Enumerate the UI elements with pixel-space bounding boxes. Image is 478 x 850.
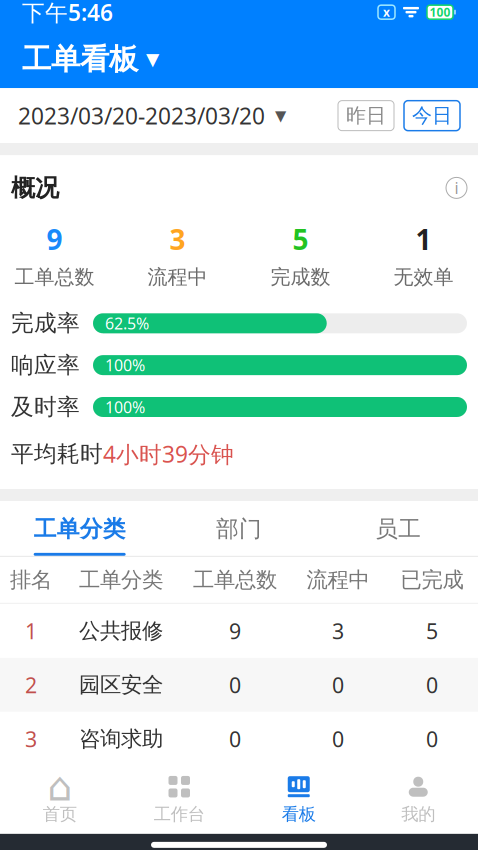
staticText: 2023/03/20-2023/03/20	[18, 101, 265, 131]
button[interactable]: 工单分类	[0, 501, 159, 556]
button[interactable]: ⌂	[0, 769, 119, 831]
staticText: 我的	[401, 804, 435, 825]
staticText: 响应率	[11, 351, 80, 379]
button[interactable]: 说明	[446, 177, 467, 198]
staticText: 3	[169, 221, 185, 258]
button[interactable]: 工作台	[119, 769, 239, 831]
staticText: 无效单	[393, 265, 453, 289]
staticText: 工作台	[154, 804, 205, 825]
staticText: 公共报修	[79, 618, 163, 644]
staticText: 首页	[43, 804, 77, 825]
staticText: 100	[429, 4, 450, 20]
staticText: 工单分类	[34, 515, 126, 543]
staticText: 咨询求助	[79, 726, 163, 752]
button[interactable]: 2023/03/20-2023/03/20	[0, 93, 286, 139]
staticText: ⌂	[47, 764, 72, 809]
button[interactable]: 员工	[319, 501, 478, 556]
staticText: i	[454, 177, 458, 198]
button[interactable]: 昨日	[338, 101, 394, 131]
staticText: 0	[426, 671, 438, 699]
staticText: 5	[426, 617, 438, 645]
staticText: 平均耗时	[11, 440, 103, 468]
staticText: ▼	[275, 107, 286, 124]
staticText: 工单看板	[22, 41, 138, 77]
button[interactable]: 看板	[239, 769, 358, 831]
button[interactable]: 部门	[159, 501, 319, 556]
staticText: 工单分类	[79, 567, 163, 593]
staticText: ▼	[146, 49, 159, 69]
staticText: 已完成	[400, 567, 463, 593]
staticText: 工单总数	[193, 567, 277, 593]
staticText: 下午5:46	[22, 0, 113, 27]
button[interactable]: 我的	[358, 769, 478, 831]
staticText: 0	[332, 671, 344, 699]
staticText: 今日	[412, 103, 452, 128]
staticText: 工单总数	[14, 265, 94, 289]
staticText: 9	[229, 617, 241, 645]
button[interactable]: 工单看板	[0, 33, 181, 85]
staticText: 流程中	[147, 265, 207, 289]
staticText: 完成率	[11, 309, 80, 337]
staticText: 100%	[105, 354, 145, 376]
staticText: 概况	[11, 173, 59, 203]
staticText: 员工	[375, 515, 421, 543]
staticText: 流程中	[306, 567, 369, 593]
staticText: 3	[25, 725, 37, 753]
staticText: 0	[332, 725, 344, 753]
staticText: 2	[25, 671, 37, 699]
staticText: 9	[46, 221, 62, 258]
staticText: 4小时39分钟	[103, 439, 234, 469]
staticText: 0	[229, 725, 241, 753]
staticText: 1	[415, 221, 431, 258]
staticText: 排名	[10, 567, 52, 593]
staticText: 100%	[105, 396, 145, 418]
staticText: 完成数	[270, 265, 330, 289]
staticText: 62.5%	[105, 313, 149, 334]
staticText: 园区安全	[79, 672, 163, 698]
button[interactable]: 今日	[404, 101, 460, 131]
staticText: 看板	[282, 804, 316, 825]
staticText: 0	[426, 725, 438, 753]
staticText: 0	[229, 671, 241, 699]
staticText: 5	[292, 221, 308, 258]
staticText: 1	[25, 617, 37, 645]
staticText: x	[383, 4, 390, 20]
staticText: 部门	[216, 515, 262, 543]
staticText: 及时率	[11, 393, 80, 421]
staticText: 昨日	[346, 103, 386, 128]
staticText: 3	[332, 617, 344, 645]
